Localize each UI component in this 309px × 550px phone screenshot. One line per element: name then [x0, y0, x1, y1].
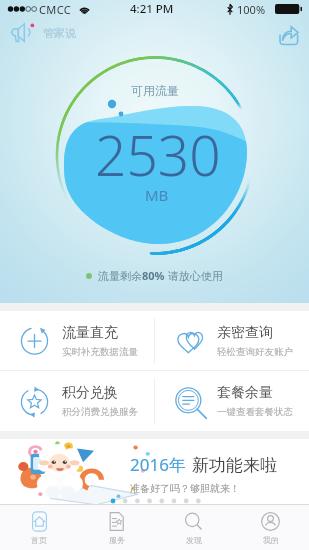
button[interactable]: 首页	[0, 505, 78, 550]
button[interactable]: 发现	[155, 505, 232, 550]
button[interactable]: 我的	[232, 505, 309, 550]
staticText: 亲密查询	[217, 324, 273, 342]
staticText: 新功能来啦	[192, 455, 277, 476]
staticText: 积分消费兑换服务	[62, 406, 138, 418]
staticText: 2016年	[130, 453, 186, 476]
staticText: CMCC	[39, 2, 72, 17]
staticText: 80%	[142, 268, 165, 283]
staticText: MB	[145, 185, 169, 205]
button[interactable]: 套餐余量	[155, 371, 309, 431]
staticText: 请放心使用	[165, 268, 223, 283]
staticText: 可用流量	[131, 83, 179, 98]
staticText: 4:21 PM	[130, 1, 174, 17]
button[interactable]: 2016年	[0, 439, 309, 504]
staticText: 管家说	[43, 26, 76, 40]
staticText: 2530	[95, 117, 221, 192]
staticText: 首页	[31, 535, 47, 545]
staticText: 一键查看套餐状态	[217, 406, 293, 418]
staticText: 我的	[263, 535, 279, 545]
button[interactable]: 管家说	[6, 20, 80, 46]
staticText: 轻松查询好友账户	[217, 346, 293, 358]
staticText: 流量直充	[62, 324, 118, 342]
button[interactable]: 积分兑换	[0, 371, 154, 431]
staticText: 流量剩余	[98, 269, 142, 283]
staticText: 100%	[237, 2, 266, 17]
staticText: 准备好了吗？够胆就来！	[130, 482, 240, 495]
button[interactable]: 流量直充	[0, 311, 154, 370]
button[interactable]: 亲密查询	[155, 311, 309, 370]
staticText: 服务	[109, 535, 125, 545]
button[interactable]: Share	[271, 18, 305, 52]
staticText: 发现	[186, 535, 202, 545]
staticText: 套餐余量	[217, 384, 273, 402]
staticText: 积分兑换	[62, 384, 118, 402]
button[interactable]: 服务	[78, 505, 155, 550]
staticText: 实时补充数据流量	[62, 346, 138, 358]
